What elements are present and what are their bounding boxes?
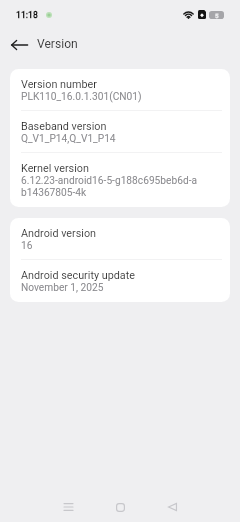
button[interactable]: Kernel version	[10, 153, 230, 207]
staticText: Q_V1_P14,Q_V1_P14	[21, 133, 116, 145]
staticText: Android security update	[21, 269, 135, 282]
staticText: November 1, 2025	[21, 282, 104, 294]
staticText: Kernel version	[21, 162, 89, 175]
button[interactable]: Navigate up	[0, 29, 38, 61]
staticText: PLK110_16.0.1.301(CN01)	[21, 91, 142, 103]
staticText: Baseband version	[21, 120, 107, 133]
button[interactable]: Recent apps	[53, 492, 83, 522]
staticText: Version	[37, 37, 78, 51]
staticText: 6.12.23-android16-5-g188c695beb6d-a b143…	[21, 175, 197, 199]
staticText: 16	[21, 240, 33, 252]
button[interactable]: Android security update	[10, 260, 230, 302]
button[interactable]: Back	[157, 492, 187, 522]
staticText: Version number	[21, 78, 97, 91]
button[interactable]: Home	[105, 492, 135, 522]
staticText: 5	[215, 12, 219, 19]
staticText: 11:18	[16, 10, 38, 20]
button[interactable]: Baseband version	[10, 111, 230, 153]
staticText: Android version	[21, 227, 97, 240]
button[interactable]: Version number	[10, 69, 230, 111]
button[interactable]: Android version	[10, 218, 230, 260]
